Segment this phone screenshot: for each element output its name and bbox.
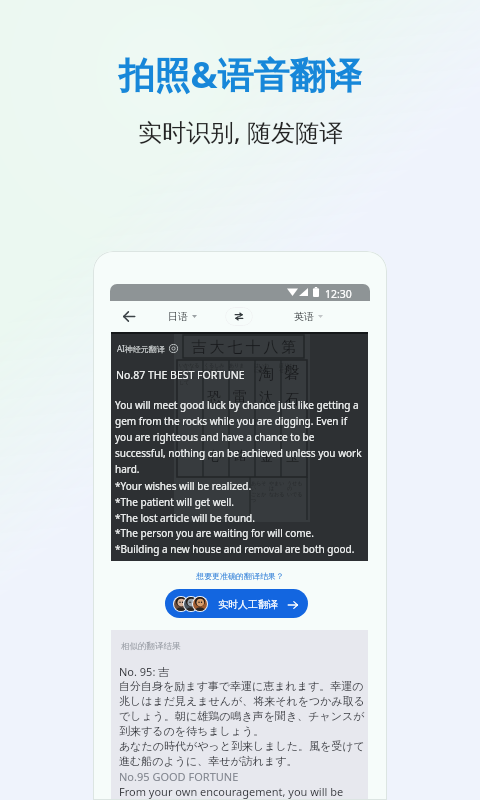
staticText: ほりだ せよ [279,362,295,374]
staticText: you are righteous and have a chance to b… [115,430,315,444]
staticText: 雷 [233,388,247,406]
staticText: No. 95: 吉 [119,664,170,679]
staticText: *Your wishes will be realized. [115,479,252,493]
staticText: No.87 THE BEST FORTUNE [116,368,245,382]
staticText: 兆しはまだ見えませんが、将来それをつかみ取る [119,694,366,708]
staticText: いかなる ときも こころ して [179,362,200,386]
staticText: 汰 [259,389,273,407]
staticText: *The lost article will be found. [115,511,255,525]
staticText: 到来するのを待ちましょう。 [119,724,265,738]
button[interactable]: 英语 [286,304,330,329]
staticText: 12:30 [325,287,352,301]
staticText: 金 [260,448,273,464]
staticText: うせもの いでる [287,480,305,498]
button[interactable]: Swap languages [225,307,253,326]
staticText: 想要更准确的翻译结果？ [196,571,284,581]
staticText: No.95 GOOD FORTUNE [119,769,239,784]
staticText: AI神经元翻译 [117,343,165,354]
staticText: gem from the rocks while you are digging… [115,414,348,428]
staticText: successful, nothing can be achieved unle… [115,446,362,460]
staticText: 心 [208,448,221,464]
button[interactable]: 实时人工翻译 [165,589,308,618]
staticText: 進む船のように、幸せが訪れます。 [119,754,298,768]
staticText: 相似的翻译结果 [121,641,181,652]
staticText: 自分自身を励ます事で幸運に恵まれます。幸運の [119,679,364,693]
staticText: くるしみ のさきに ひかり [204,362,225,380]
staticText: 实时人工翻译 [218,598,278,611]
button[interactable]: Back [107,304,151,329]
staticText: 玉 [286,448,299,464]
button[interactable]: 日语 [160,304,204,329]
staticText: 恐 [207,389,221,407]
staticText: *The person you are waiting for will com… [115,526,314,540]
staticText: 日语 [168,310,188,323]
staticText: 拍照&语音翻译 [118,50,362,99]
staticText: 实时识别, 随发随译 [138,115,343,148]
staticText: *Building a new house and removal are bo… [115,542,355,556]
staticText: やまいは なおる [269,480,287,498]
staticText: You will meet good luck by chance just l… [115,398,359,412]
staticText: ありま つべし たから [229,362,245,380]
staticText: 英语 [294,310,314,323]
staticText: hard. [115,462,140,476]
staticText: あなたの時代がやっと到来しました。風を受けて [119,739,365,753]
staticText: 淘 [258,364,274,384]
staticText: でしょう。朝に雄鶏の鳴き声を聞き、チャンスが [119,709,365,723]
staticText: 吉大七十八第 [190,338,298,357]
staticText: はいわ にあり [254,362,270,374]
staticText: 路 [234,447,247,463]
staticText: From your own encouragement, you will be [119,784,344,799]
staticText: *The patient will get well. [115,495,235,509]
staticText: 磐 [284,363,300,383]
staticText: 石 [285,391,299,409]
